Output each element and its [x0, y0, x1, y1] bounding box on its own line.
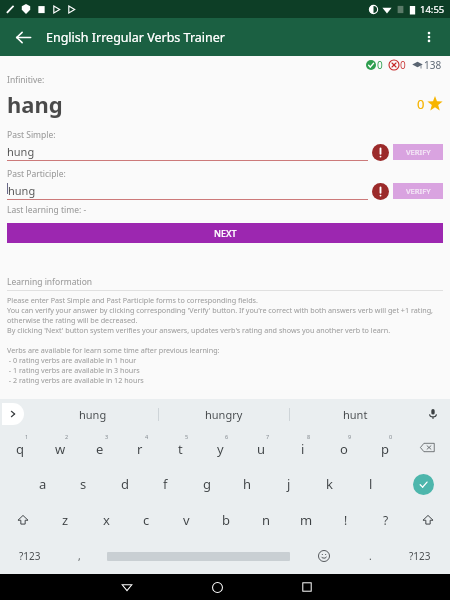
staticText: hungry	[205, 407, 243, 422]
button[interactable]: k	[309, 466, 350, 502]
staticText: h	[243, 475, 252, 493]
staticText: 7	[266, 433, 270, 440]
button[interactable]: Error	[372, 144, 389, 161]
button[interactable]: .	[350, 538, 390, 574]
button[interactable]: VERIFY	[393, 144, 443, 160]
button[interactable]: NEXT	[7, 223, 443, 243]
button[interactable]: ?	[366, 502, 406, 538]
button[interactable]: h	[227, 466, 268, 502]
staticText: e	[96, 440, 104, 458]
staticText: English Irregular Verbs Trainer	[46, 29, 226, 46]
staticText: o	[340, 440, 348, 458]
staticText: n	[262, 511, 271, 529]
button[interactable]: 7	[241, 429, 282, 466]
staticText: j	[287, 475, 291, 493]
button[interactable]: Voice input	[422, 403, 444, 425]
staticText: ?123	[409, 549, 431, 563]
button[interactable]: 8	[282, 429, 323, 466]
staticText: 0	[400, 58, 406, 72]
button[interactable]: 5	[160, 429, 200, 466]
button[interactable]: 3	[80, 429, 120, 466]
staticText: ?	[383, 512, 389, 528]
button[interactable]: 0	[364, 429, 405, 466]
staticText: hung	[8, 183, 36, 198]
button[interactable]: ?123	[0, 538, 59, 574]
staticText: Past Simple:	[7, 129, 56, 141]
staticText: q	[16, 440, 24, 458]
button[interactable]: 1	[0, 429, 40, 466]
button[interactable]: 2	[40, 429, 80, 466]
staticText: hung	[7, 144, 35, 159]
staticText: ?123	[19, 549, 41, 563]
button[interactable]: b	[206, 502, 246, 538]
button[interactable]: d	[104, 466, 145, 502]
button[interactable]: z	[45, 502, 86, 538]
staticText: hunt	[343, 407, 368, 422]
button[interactable]: hung	[28, 399, 158, 429]
staticText: v	[183, 511, 190, 529]
staticText: z	[62, 511, 69, 529]
staticText: Infinitive:	[7, 74, 45, 86]
button[interactable]: Shift	[0, 502, 45, 538]
button[interactable]: f	[145, 466, 186, 502]
staticText: l	[369, 475, 373, 493]
staticText: u	[257, 440, 266, 458]
button[interactable]: Emoji	[298, 538, 350, 574]
button[interactable]: l	[350, 466, 391, 502]
staticText: b	[222, 511, 230, 529]
button[interactable]: 9	[323, 429, 364, 466]
staticText: VERIFY	[406, 186, 431, 196]
staticText: c	[143, 511, 150, 529]
staticText: Please enter Past Simple and Past Partic…	[7, 295, 443, 385]
staticText: Last learning time: -	[7, 204, 87, 216]
button[interactable]: Space	[99, 538, 298, 574]
staticText: ,	[78, 549, 81, 563]
staticText: NEXT	[214, 227, 237, 239]
button[interactable]: ,	[59, 538, 99, 574]
button[interactable]: Back	[6, 20, 40, 54]
button[interactable]: Error	[372, 183, 389, 200]
button[interactable]: 4	[120, 429, 160, 466]
button[interactable]: c	[126, 502, 166, 538]
button[interactable]: hungry	[159, 399, 289, 429]
staticText: 0	[417, 95, 425, 113]
button[interactable]: 6	[200, 429, 241, 466]
button[interactable]: v	[166, 502, 206, 538]
staticText: a	[39, 475, 47, 493]
button[interactable]: Backspace	[405, 429, 450, 466]
staticText: x	[103, 511, 110, 529]
button[interactable]: s	[63, 466, 104, 502]
staticText: i	[301, 440, 305, 458]
staticText: y	[217, 440, 224, 458]
staticText: 2	[65, 433, 69, 440]
staticText: 5	[185, 433, 189, 440]
staticText: 138	[424, 58, 442, 72]
staticText: VERIFY	[406, 147, 431, 157]
button[interactable]: a	[22, 466, 63, 502]
button[interactable]: g	[186, 466, 227, 502]
button[interactable]: Shift	[406, 502, 450, 538]
button[interactable]: VERIFY	[393, 183, 443, 199]
button[interactable]: Back	[82, 574, 172, 600]
staticText: hang	[7, 89, 63, 119]
staticText: 4	[145, 433, 149, 440]
staticText: 1	[25, 433, 29, 440]
button[interactable]: Done	[396, 466, 450, 502]
button[interactable]: x	[86, 502, 126, 538]
button[interactable]: n	[246, 502, 286, 538]
staticText: .	[369, 549, 372, 563]
staticText: Past Participle:	[7, 168, 66, 180]
staticText: f	[163, 475, 168, 493]
staticText: Learning information	[7, 276, 93, 288]
staticText: w	[55, 440, 66, 458]
button[interactable]: Recent apps	[262, 574, 352, 600]
button[interactable]: More options	[412, 20, 446, 54]
button[interactable]: Home	[172, 574, 262, 600]
button[interactable]: j	[268, 466, 309, 502]
button[interactable]: !	[326, 502, 366, 538]
button[interactable]: Expand suggestions	[2, 403, 24, 425]
button[interactable]: hunt	[290, 399, 420, 429]
button[interactable]: m	[286, 502, 326, 538]
button[interactable]: ?123	[390, 538, 450, 574]
staticText: 0	[377, 58, 383, 72]
